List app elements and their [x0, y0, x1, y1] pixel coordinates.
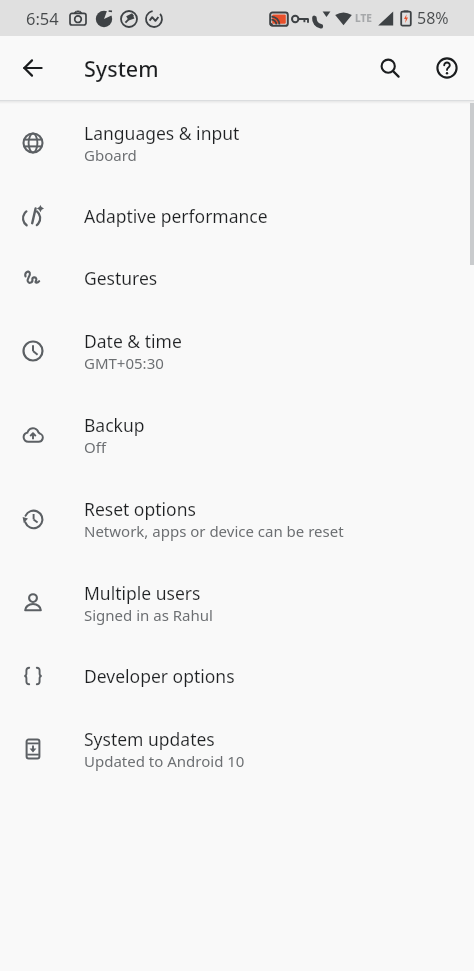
button[interactable]: [378, 56, 402, 80]
staticText: Multiple users: [84, 581, 201, 605]
button[interactable]: Backup: [0, 393, 474, 477]
staticText: Updated to Android 10: [84, 751, 245, 771]
staticText: System: [84, 54, 159, 83]
button[interactable]: Adaptive performance: [0, 185, 474, 247]
staticText: Gboard: [84, 145, 137, 165]
button[interactable]: [435, 56, 459, 80]
staticText: Network, apps or device can be reset: [84, 521, 344, 541]
staticText: Signed in as Rahul: [84, 605, 213, 625]
staticText: System updates: [84, 727, 215, 751]
button[interactable]: Languages & input: [0, 101, 474, 185]
staticText: Backup: [84, 413, 145, 437]
button[interactable]: Reset options: [0, 477, 474, 561]
staticText: GMT+05:30: [84, 353, 164, 373]
staticText: Developer options: [84, 664, 235, 688]
button[interactable]: Developer options: [0, 645, 474, 707]
staticText: 58%: [417, 7, 449, 29]
staticText: Gestures: [84, 266, 158, 290]
staticText: Adaptive performance: [84, 204, 268, 228]
button[interactable]: Date & time: [0, 309, 474, 393]
staticText: Off: [84, 437, 107, 457]
button[interactable]: Multiple users: [0, 561, 474, 645]
staticText: LTE: [355, 11, 372, 25]
staticText: Reset options: [84, 497, 196, 521]
staticText: Languages & input: [84, 121, 240, 145]
button[interactable]: Gestures: [0, 247, 474, 309]
button[interactable]: [21, 56, 45, 80]
button[interactable]: System updates: [0, 707, 474, 791]
staticText: Date & time: [84, 329, 182, 353]
staticText: 6:54: [26, 7, 59, 29]
